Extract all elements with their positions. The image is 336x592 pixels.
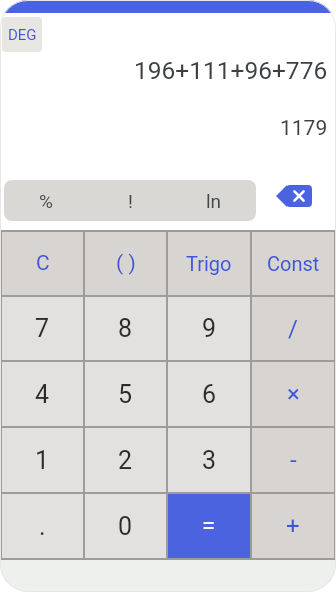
- button[interactable]: [276, 185, 312, 207]
- staticText: Const: [267, 252, 320, 275]
- staticText: .: [39, 512, 46, 541]
- button[interactable]: 4: [2, 362, 83, 426]
- button[interactable]: 1: [2, 428, 83, 492]
- button[interactable]: 6: [168, 362, 250, 426]
- staticText: Trigo: [186, 252, 232, 275]
- button[interactable]: ×: [252, 362, 334, 426]
- staticText: 1179: [280, 116, 328, 141]
- staticText: +: [286, 512, 300, 540]
- staticText: =: [202, 512, 216, 540]
- staticText: 7: [35, 314, 50, 343]
- staticText: /: [288, 315, 298, 343]
- staticText: %: [39, 190, 53, 212]
- button[interactable]: C: [2, 232, 83, 295]
- staticText: 8: [118, 314, 133, 343]
- staticText: 1: [35, 446, 50, 475]
- staticText: ( ): [116, 251, 136, 276]
- button[interactable]: /: [252, 297, 334, 360]
- staticText: 9: [202, 314, 217, 343]
- staticText: -: [290, 446, 297, 474]
- staticText: 4: [35, 380, 50, 409]
- button[interactable]: 8: [85, 297, 166, 360]
- staticText: 5: [118, 380, 133, 409]
- button[interactable]: DEG: [2, 17, 42, 52]
- button[interactable]: ln: [172, 180, 256, 221]
- button[interactable]: Trigo: [168, 232, 250, 295]
- button[interactable]: 7: [2, 297, 83, 360]
- staticText: ×: [287, 380, 300, 408]
- button[interactable]: -: [252, 428, 334, 492]
- button[interactable]: 0: [85, 494, 166, 558]
- staticText: 196+111+96+776: [134, 56, 328, 85]
- staticText: 2: [118, 446, 133, 475]
- staticText: 6: [202, 380, 217, 409]
- button[interactable]: 2: [85, 428, 166, 492]
- button[interactable]: Const: [252, 232, 334, 295]
- button[interactable]: %: [4, 180, 88, 221]
- staticText: !: [128, 190, 133, 212]
- staticText: C: [36, 251, 50, 276]
- button[interactable]: ( ): [85, 232, 166, 295]
- button[interactable]: 5: [85, 362, 166, 426]
- button[interactable]: 9: [168, 297, 250, 360]
- button[interactable]: +: [252, 494, 334, 558]
- staticText: 3: [202, 446, 217, 475]
- button[interactable]: .: [2, 494, 83, 558]
- button[interactable]: !: [88, 180, 172, 221]
- staticText: DEG: [8, 26, 37, 44]
- staticText: 0: [118, 512, 133, 541]
- staticText: ln: [206, 190, 222, 212]
- button[interactable]: =: [168, 494, 250, 558]
- button[interactable]: 3: [168, 428, 250, 492]
